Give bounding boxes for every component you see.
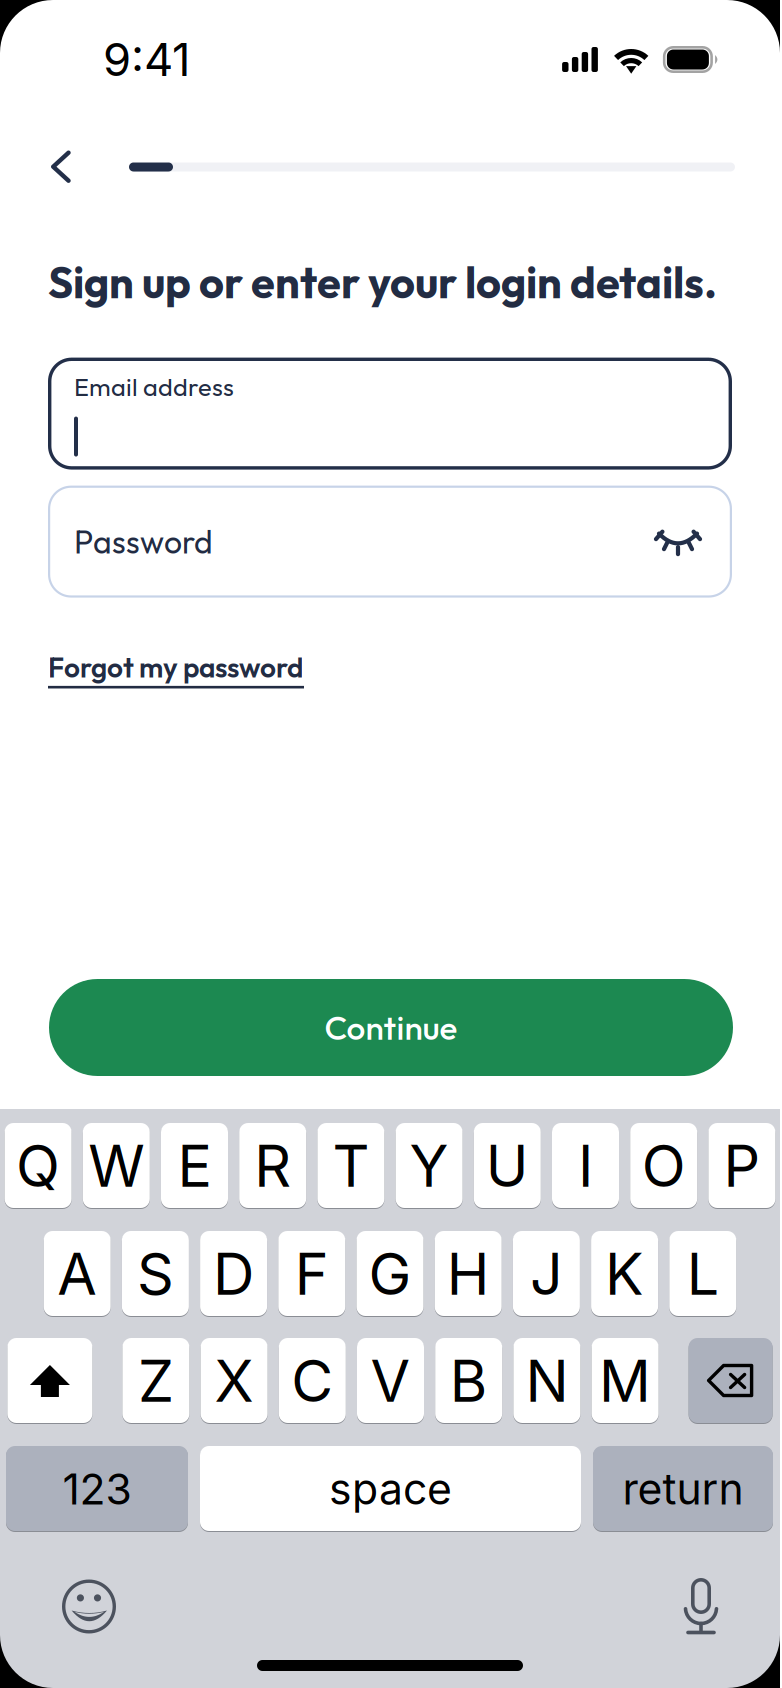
staticText: space [329, 1463, 452, 1515]
staticText: X [215, 1346, 254, 1416]
button[interactable]: Delete [689, 1339, 773, 1423]
staticText: I [578, 1131, 593, 1201]
staticText: L [687, 1239, 719, 1309]
button[interactable]: Show password [654, 526, 702, 557]
button[interactable]: Dictate [679, 1578, 723, 1635]
staticText: P [723, 1131, 760, 1201]
staticText: A [57, 1239, 97, 1309]
staticText: Sign up or enter your login details. [48, 255, 717, 310]
staticText: Y [410, 1131, 449, 1201]
staticText: Email address [74, 371, 234, 402]
staticText: J [530, 1239, 563, 1309]
staticText: U [486, 1131, 529, 1201]
button[interactable]: return [593, 1447, 773, 1531]
staticText: C [291, 1346, 333, 1416]
staticText: T [332, 1131, 369, 1201]
staticText: H [447, 1239, 490, 1309]
button[interactable]: Back [0, 139, 90, 195]
staticText: W [88, 1131, 144, 1201]
staticText: 123 [62, 1463, 131, 1515]
staticText: N [525, 1346, 568, 1416]
button[interactable]: 123 [6, 1447, 188, 1531]
staticText: Q [16, 1131, 60, 1201]
staticText: Continue [324, 1006, 457, 1048]
staticText: V [370, 1346, 410, 1416]
staticText: D [213, 1239, 254, 1309]
staticText: M [599, 1346, 651, 1416]
staticText: 9:41 [103, 32, 190, 87]
staticText: E [177, 1131, 211, 1201]
staticText: O [642, 1131, 686, 1201]
staticText: Z [138, 1346, 174, 1416]
staticText: Password [74, 521, 213, 562]
button[interactable]: Emoji [62, 1579, 116, 1633]
staticText: Forgot my password [48, 650, 303, 685]
staticText: return [622, 1463, 743, 1515]
staticText: F [295, 1239, 329, 1309]
button[interactable]: Shift [7, 1339, 92, 1423]
button[interactable]: Continue [0, 979, 733, 1076]
staticText: B [450, 1346, 488, 1416]
button[interactable]: Forgot my password [0, 598, 304, 688]
button[interactable]: space [200, 1447, 581, 1531]
staticText: S [137, 1239, 174, 1309]
staticText: K [605, 1239, 644, 1309]
staticText: R [254, 1131, 291, 1201]
staticText: G [368, 1239, 411, 1309]
